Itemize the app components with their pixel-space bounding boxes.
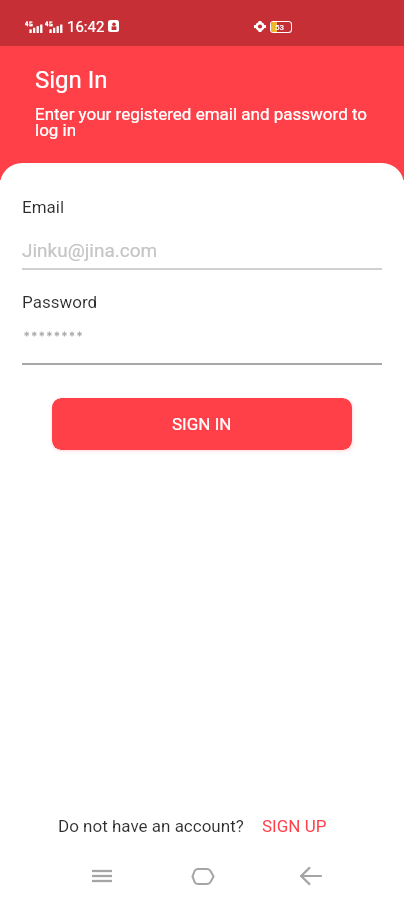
- button[interactable]: Recent apps: [78, 852, 126, 900]
- staticText: 16:42: [67, 18, 105, 36]
- staticText: Password: [22, 292, 98, 312]
- staticText: Enter your registered email and password…: [35, 104, 371, 141]
- button[interactable]: Home: [179, 852, 227, 900]
- staticText: Sign In: [35, 66, 108, 94]
- staticText: Email: [22, 197, 65, 217]
- button[interactable]: Password: [0, 286, 404, 366]
- staticText: 53: [275, 23, 284, 32]
- staticText: Do not have an account?: [58, 816, 244, 836]
- staticText: Jinku@jina.com: [22, 239, 158, 261]
- button[interactable]: SIGN UP: [262, 816, 327, 836]
- button[interactable]: Email: [0, 191, 404, 271]
- button[interactable]: SIGN IN: [52, 398, 352, 450]
- staticText: SIGN IN: [172, 414, 232, 434]
- staticText: SIGN UP: [262, 816, 327, 836]
- button[interactable]: Back: [286, 852, 334, 900]
